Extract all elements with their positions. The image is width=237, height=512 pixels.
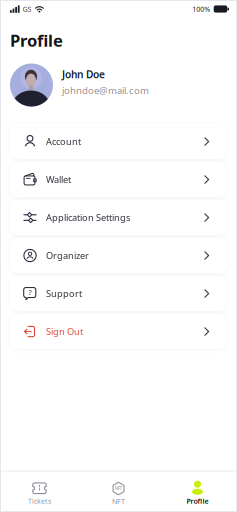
staticText: johndoe@mail.com — [62, 84, 149, 97]
staticText: 100% — [192, 4, 210, 14]
button[interactable]: Profile — [158, 472, 237, 506]
button[interactable]: Application Settings — [10, 200, 227, 235]
staticText: Wallet — [46, 173, 71, 186]
staticText: Tickets — [28, 496, 51, 506]
staticText: Organizer — [46, 249, 89, 262]
button[interactable]: Tickets — [0, 472, 79, 506]
staticText: Sign Out — [46, 325, 83, 338]
staticText: Account — [46, 135, 81, 148]
staticText: NFT — [114, 485, 122, 492]
button[interactable]: Sign Out — [10, 314, 227, 349]
button[interactable]: ? — [10, 276, 227, 311]
staticText: John Doe — [62, 67, 105, 81]
staticText: GS — [23, 4, 32, 14]
button[interactable]: NFT — [79, 471, 158, 506]
staticText: Application Settings — [46, 211, 130, 224]
staticText: NFT — [112, 496, 125, 506]
staticText: ? — [28, 287, 31, 297]
staticText: Support — [46, 287, 82, 300]
staticText: Profile — [10, 29, 63, 51]
button[interactable]: Organizer — [10, 238, 227, 273]
button[interactable]: Account — [10, 124, 227, 159]
button[interactable]: Wallet — [10, 162, 227, 197]
staticText: Profile — [186, 496, 208, 506]
button[interactable]: John Doe — [0, 63, 237, 106]
